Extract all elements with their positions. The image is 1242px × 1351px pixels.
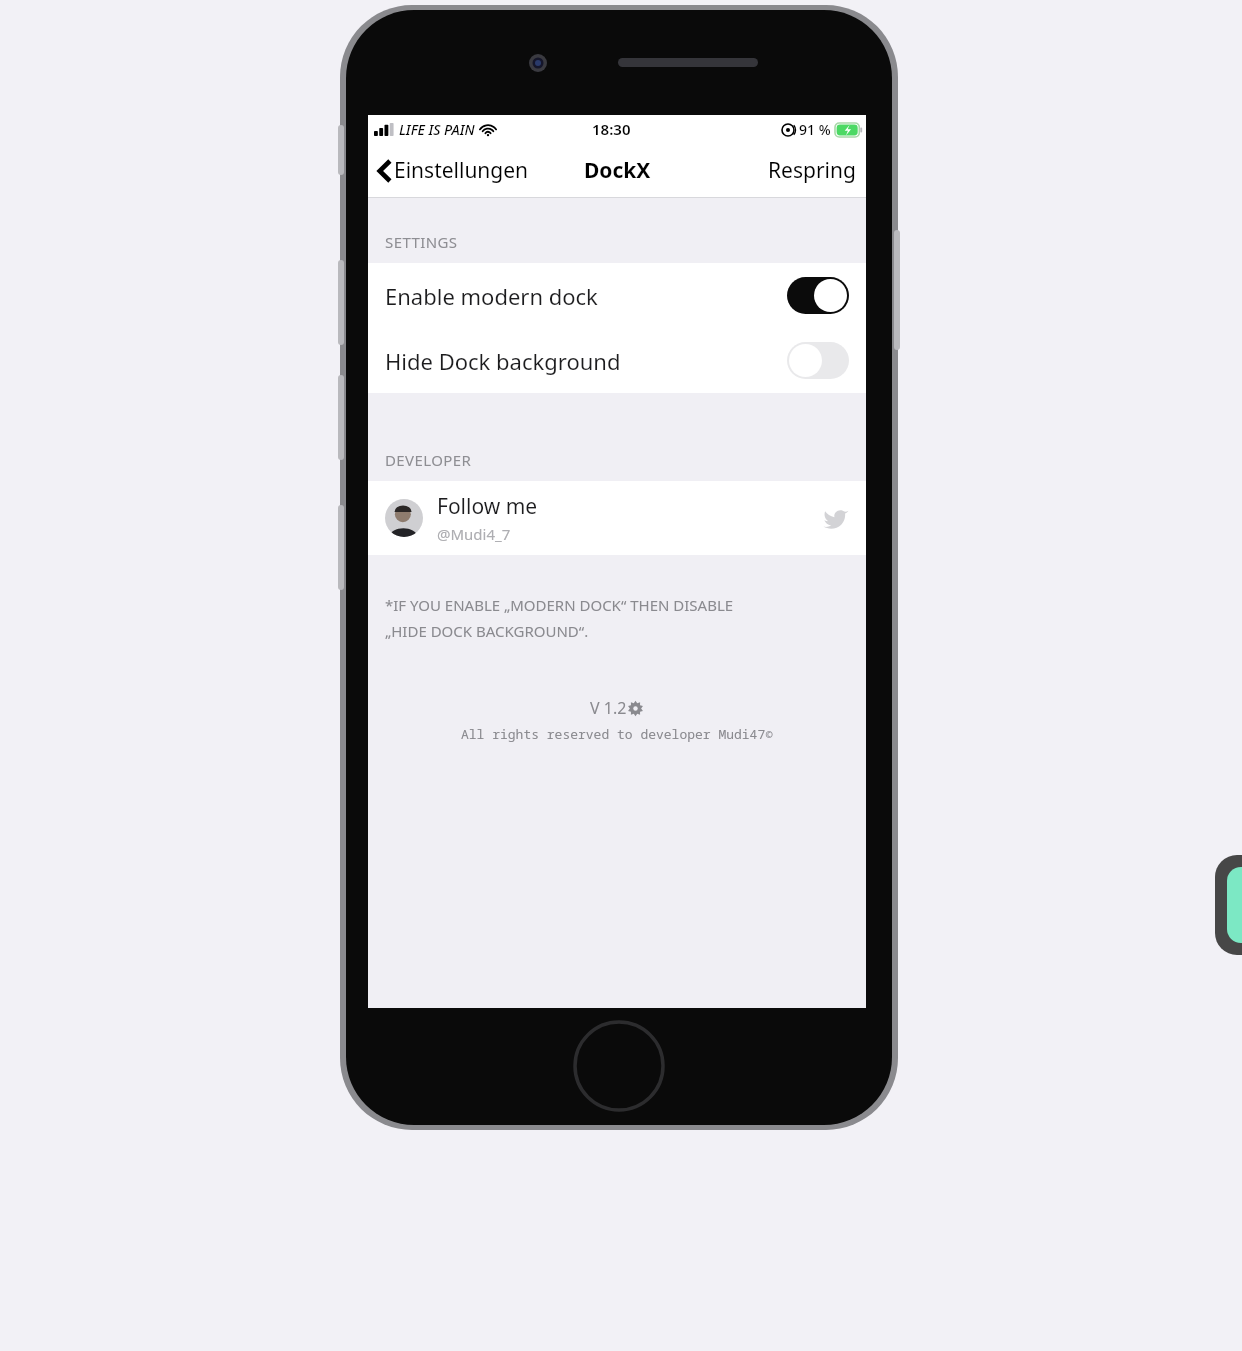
staticText: 18:30 xyxy=(592,119,631,139)
staticText: LIFE IS PAIN xyxy=(399,120,475,139)
button[interactable]: Hide Dock background xyxy=(787,342,849,379)
staticText: 91 % xyxy=(799,120,831,139)
staticText: Enable modern dock xyxy=(385,281,787,311)
staticText: Einstellungen xyxy=(394,156,529,185)
staticText: V 1.2 xyxy=(590,697,627,719)
button[interactable]: Enable modern dock xyxy=(787,277,849,314)
staticText: Hide Dock background xyxy=(385,346,787,376)
button[interactable]: Follow me xyxy=(368,481,866,555)
other: Twitter xyxy=(823,505,849,531)
staticText: DEVELOPER xyxy=(385,450,472,470)
button[interactable]: Respring xyxy=(758,148,866,193)
staticText: @Mudi4_7 xyxy=(437,524,511,544)
button[interactable]: Einstellungen xyxy=(368,150,537,191)
staticText: All rights reserved to developer Mudi47© xyxy=(368,725,866,743)
button[interactable]: Hide Dock background xyxy=(368,328,866,393)
button[interactable]: Enable modern dock xyxy=(368,263,866,328)
staticText: *IF YOU ENABLE „MODERN DOCK“ THEN DISABL… xyxy=(385,595,734,642)
staticText: SETTINGS xyxy=(385,232,458,252)
staticText: Follow me xyxy=(437,492,538,521)
staticText: DockX xyxy=(584,156,651,185)
